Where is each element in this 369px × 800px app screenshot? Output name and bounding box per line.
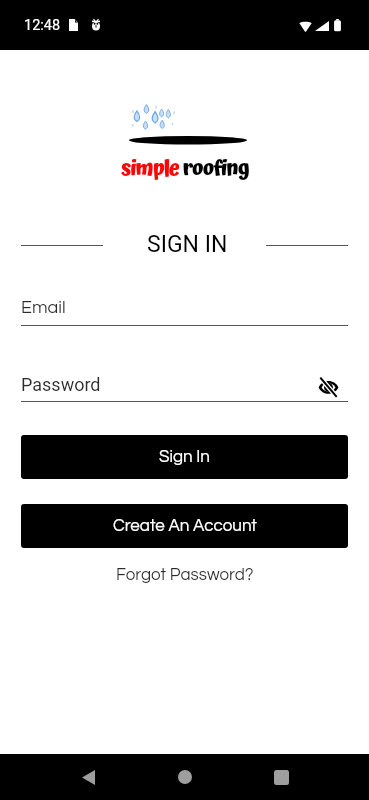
staticText: Password	[21, 374, 101, 395]
staticText: Email	[21, 298, 66, 317]
staticText: simple	[121, 152, 179, 186]
staticText: Sign In	[159, 448, 210, 466]
button[interactable]: Sign In	[21, 435, 348, 479]
staticText: Create An Account	[113, 517, 257, 535]
staticText: 12:48	[24, 17, 61, 34]
button[interactable]: Recents	[258, 754, 304, 800]
staticText: Forgot Password?	[116, 566, 254, 584]
staticText: SIGN IN	[147, 231, 228, 258]
button[interactable]: Toggle password visibility	[313, 373, 343, 400]
staticText: roofing	[179, 152, 249, 186]
button[interactable]: Home	[162, 754, 208, 800]
button[interactable]: Back	[65, 754, 111, 800]
button[interactable]: Forgot Password?	[106, 563, 264, 587]
button[interactable]: Create An Account	[21, 504, 348, 548]
